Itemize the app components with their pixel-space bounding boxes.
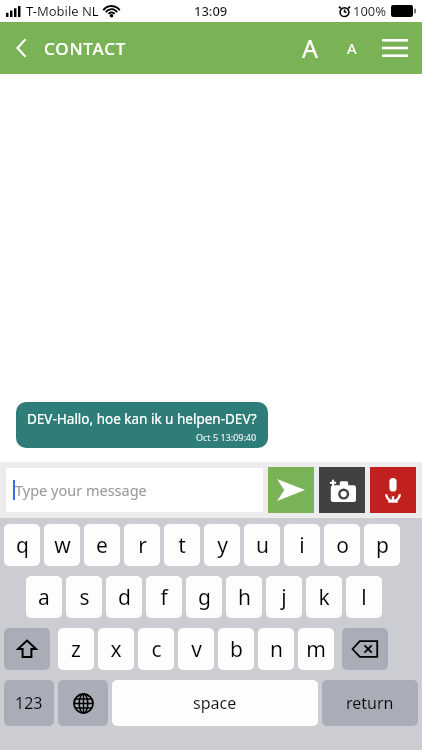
button[interactable]: x (98, 628, 134, 670)
button[interactable]: Numbers (4, 680, 54, 726)
button[interactable]: Add photo (319, 467, 365, 513)
button[interactable]: return (322, 680, 418, 726)
button[interactable]: y (204, 524, 240, 566)
button[interactable]: k (306, 576, 342, 618)
staticText: e (96, 531, 108, 560)
button[interactable]: n (258, 628, 294, 670)
button[interactable]: z (58, 628, 94, 670)
button[interactable]: Increase text size (288, 22, 332, 74)
staticText: k (318, 583, 330, 612)
staticText: DEV-Hallo, hoe kan ik u helpen-DEV? (27, 410, 257, 428)
staticText: x (110, 635, 122, 664)
staticText: g (198, 583, 211, 612)
button[interactable]: j (266, 576, 302, 618)
staticText: h (238, 583, 251, 612)
staticText: a (38, 583, 50, 612)
button[interactable]: w (44, 524, 80, 566)
button[interactable]: Menu (372, 22, 418, 74)
staticText: r (138, 531, 147, 560)
staticText: f (160, 583, 168, 612)
button[interactable]: v (178, 628, 214, 670)
staticText: n (270, 635, 283, 664)
staticText: l (361, 583, 367, 612)
button[interactable]: space (112, 680, 318, 726)
staticText: u (256, 531, 269, 560)
button[interactable]: Record voice message (370, 467, 416, 513)
staticText: c (151, 635, 162, 664)
staticText: A (347, 38, 357, 58)
staticText: q (16, 531, 29, 560)
staticText: return (346, 692, 394, 714)
button[interactable]: p (364, 524, 400, 566)
button[interactable]: t (164, 524, 200, 566)
staticText: w (54, 531, 71, 560)
staticText: t (178, 531, 186, 560)
button[interactable]: o (324, 524, 360, 566)
staticText: space (193, 692, 237, 714)
button[interactable]: a (26, 576, 62, 618)
button[interactable]: Send (268, 467, 314, 513)
staticText: p (376, 531, 389, 560)
staticText: i (299, 531, 305, 560)
button[interactable]: Backspace (342, 628, 388, 670)
staticText: b (230, 635, 243, 664)
staticText: o (336, 531, 349, 560)
staticText: CONTACT (44, 37, 127, 60)
staticText: Oct 5 13:09:40 (196, 431, 257, 443)
staticText: j (281, 583, 287, 612)
button[interactable]: c (138, 628, 174, 670)
staticText: A (302, 31, 318, 65)
button[interactable]: Type your message (6, 468, 263, 512)
button[interactable]: g (186, 576, 222, 618)
staticText: T-Mobile NL (26, 2, 99, 20)
button[interactable]: l (346, 576, 382, 618)
staticText: y (217, 531, 228, 560)
button[interactable]: Decrease text size (332, 22, 372, 74)
button[interactable]: h (226, 576, 262, 618)
button[interactable]: s (66, 576, 102, 618)
staticText: s (79, 583, 90, 612)
button[interactable]: Change keyboard (58, 680, 108, 726)
staticText: m (306, 635, 326, 664)
staticText: 100% (353, 2, 387, 20)
staticText: d (118, 583, 131, 612)
staticText: 123 (15, 692, 43, 714)
button[interactable]: e (84, 524, 120, 566)
button[interactable]: i (284, 524, 320, 566)
button[interactable]: f (146, 576, 182, 618)
button[interactable]: r (124, 524, 160, 566)
staticText: z (71, 635, 81, 664)
button[interactable]: u (244, 524, 280, 566)
staticText: Type your message (15, 480, 147, 500)
button[interactable]: q (4, 524, 40, 566)
button[interactable]: d (106, 576, 142, 618)
button[interactable]: DEV-Hallo, hoe kan ik u helpen-DEV? (16, 402, 268, 448)
button[interactable]: m (298, 628, 334, 670)
staticText: 13:09 (194, 2, 228, 20)
button[interactable]: Shift (4, 628, 50, 670)
button[interactable]: Back (0, 22, 44, 74)
button[interactable]: b (218, 628, 254, 670)
staticText: v (191, 635, 202, 664)
